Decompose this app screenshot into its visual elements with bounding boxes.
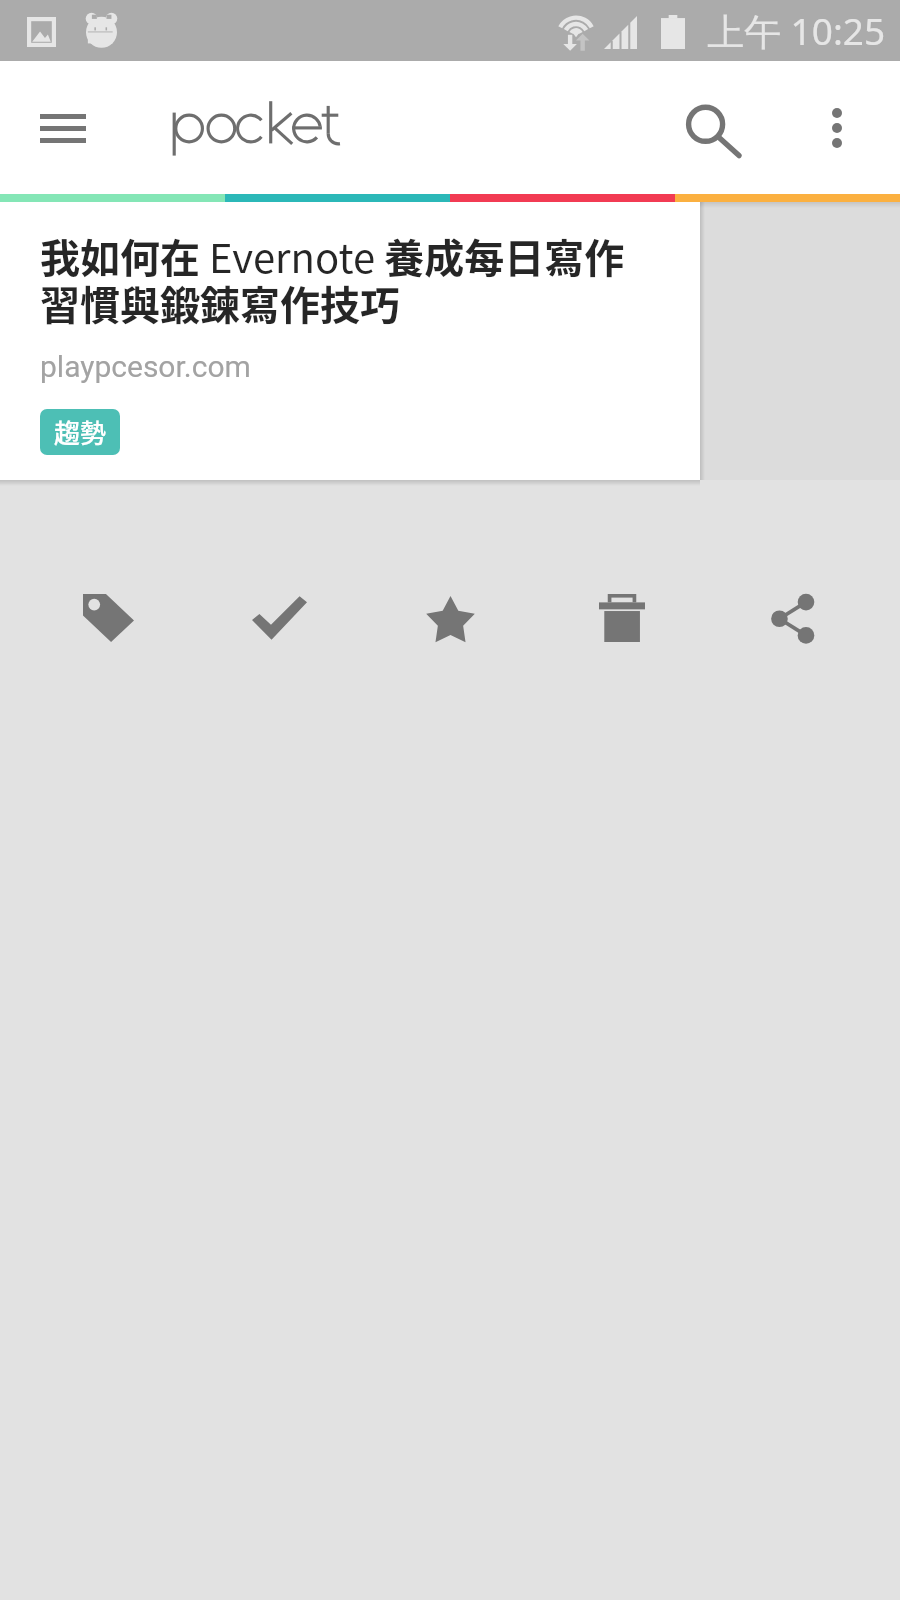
button[interactable]: Search (661, 80, 751, 170)
button[interactable]: Tag (22, 549, 194, 687)
button[interactable]: 我如何在 Evernote 養成每日寫作習慣與鍛鍊寫作技巧 (0, 202, 700, 480)
button[interactable]: More options (794, 70, 880, 156)
button[interactable]: Archive (194, 549, 365, 687)
button[interactable]: Favorite (365, 549, 536, 687)
staticText: 我如何在 Evernote 養成每日寫作習慣與鍛鍊寫作技巧 (40, 227, 655, 332)
button[interactable]: Navigation menu (18, 83, 108, 173)
staticText: 上午 10:25 (707, 5, 886, 56)
button[interactable]: Delete (536, 549, 707, 687)
button[interactable]: Share (707, 549, 878, 687)
button[interactable]: 趨勢 (40, 409, 120, 455)
staticText: playpcesor.com (40, 349, 251, 384)
staticText: 趨勢 (54, 413, 107, 451)
